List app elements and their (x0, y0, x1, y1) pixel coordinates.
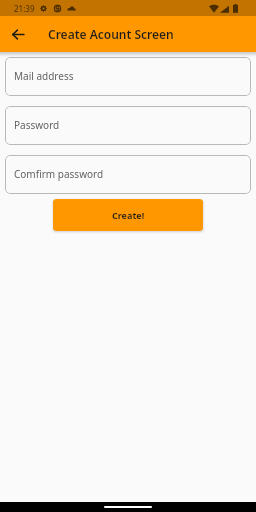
staticText: Create! (112, 209, 145, 221)
button[interactable]: Mail address (5, 57, 251, 96)
button[interactable]: Comfirm password (5, 155, 251, 194)
button[interactable]: Back (0, 16, 36, 52)
other: Home (104, 506, 152, 508)
staticText: 21:39 (14, 3, 35, 14)
staticText: Create Acount Screen (48, 26, 174, 42)
button[interactable]: Create! (53, 199, 203, 231)
button[interactable]: Password (5, 106, 251, 145)
staticText: Mail address (14, 69, 74, 83)
staticText: Password (14, 118, 60, 132)
staticText: Comfirm password (14, 167, 104, 181)
